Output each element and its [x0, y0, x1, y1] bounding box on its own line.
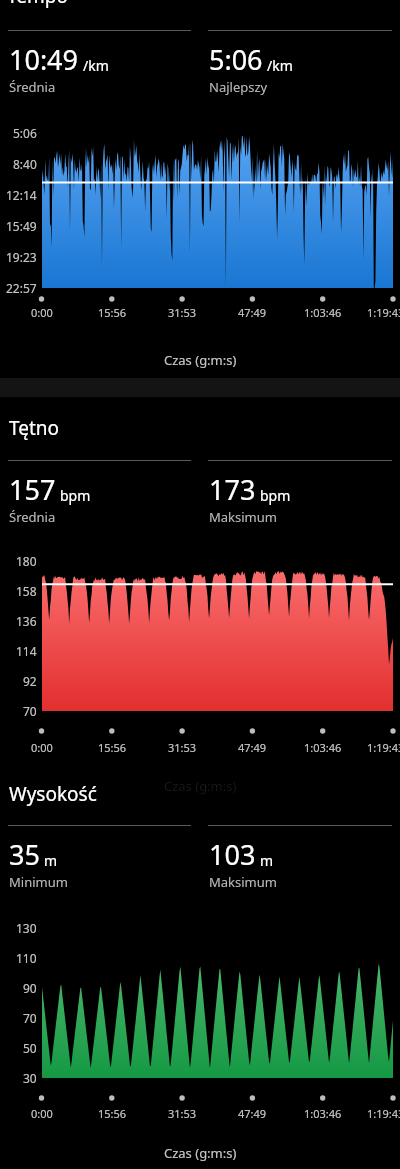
staticText: 15:56	[98, 305, 127, 320]
staticText: 10:49	[9, 41, 79, 78]
staticText: Minimum	[9, 873, 68, 891]
staticText: 15:56	[98, 1106, 127, 1121]
staticText: 180	[16, 553, 37, 569]
staticText: 5:06	[13, 125, 37, 141]
staticText: 5:06	[209, 41, 263, 78]
staticText: 12:14	[6, 187, 37, 203]
staticText: 47:49	[238, 305, 267, 320]
staticText: 35	[9, 836, 40, 873]
staticText: 0:00	[31, 740, 53, 755]
staticText: 30	[23, 1070, 37, 1086]
staticText: Średnia	[9, 78, 56, 96]
staticText: 22:57	[6, 280, 37, 296]
staticText: 19:23	[6, 249, 37, 265]
staticText: 70	[23, 703, 37, 719]
staticText: 92	[23, 673, 37, 689]
staticText: 1:03:46	[304, 740, 342, 755]
staticText: 47:49	[238, 1106, 267, 1121]
staticText: m	[260, 851, 274, 870]
staticText: 130	[16, 920, 37, 936]
staticText: Czas (g:m:s)	[164, 777, 237, 795]
staticText: Maksimum	[209, 508, 277, 526]
staticText: 70	[23, 1010, 37, 1026]
staticText: 15:49	[6, 218, 37, 234]
staticText: Wysokość	[9, 781, 97, 807]
staticText: bpm	[60, 486, 91, 505]
staticText: 0:00	[31, 305, 53, 320]
staticText: 114	[16, 643, 37, 659]
staticText: bpm	[260, 486, 291, 505]
staticText: 158	[16, 583, 37, 599]
staticText: Czas (g:m:s)	[164, 1144, 237, 1162]
staticText: 157	[9, 471, 56, 508]
staticText: 103	[209, 836, 256, 873]
staticText: 1:19:43	[367, 740, 400, 755]
button[interactable]: Tętno	[0, 406, 400, 442]
staticText: /km	[267, 56, 293, 75]
staticText: 15:56	[98, 740, 127, 755]
staticText: /km	[83, 56, 109, 75]
staticText: 31:53	[168, 305, 197, 320]
staticText: 31:53	[168, 1106, 197, 1121]
staticText: Najlepszy	[209, 78, 268, 96]
staticText: Średnia	[9, 508, 56, 526]
staticText: 50	[23, 1040, 37, 1056]
staticText: 90	[23, 980, 37, 996]
staticText: Maksimum	[209, 873, 277, 891]
button[interactable]: Wysokość	[0, 772, 400, 808]
staticText: m	[44, 851, 58, 870]
staticText: Tętno	[9, 415, 60, 441]
staticText: 1:03:46	[304, 305, 342, 320]
staticText: 1:03:46	[304, 1106, 342, 1121]
staticText: 1:19:43	[367, 1106, 400, 1121]
staticText: 0:00	[31, 1106, 53, 1121]
staticText: Czas (g:m:s)	[164, 351, 237, 369]
staticText: 31:53	[168, 740, 197, 755]
staticText: 173	[209, 471, 256, 508]
staticText: 110	[16, 950, 37, 966]
staticText: 47:49	[238, 740, 267, 755]
staticText: Tempo	[7, 0, 68, 9]
staticText: 8:40	[13, 156, 37, 172]
staticText: 136	[16, 613, 37, 629]
staticText: 1:19:43	[367, 305, 400, 320]
